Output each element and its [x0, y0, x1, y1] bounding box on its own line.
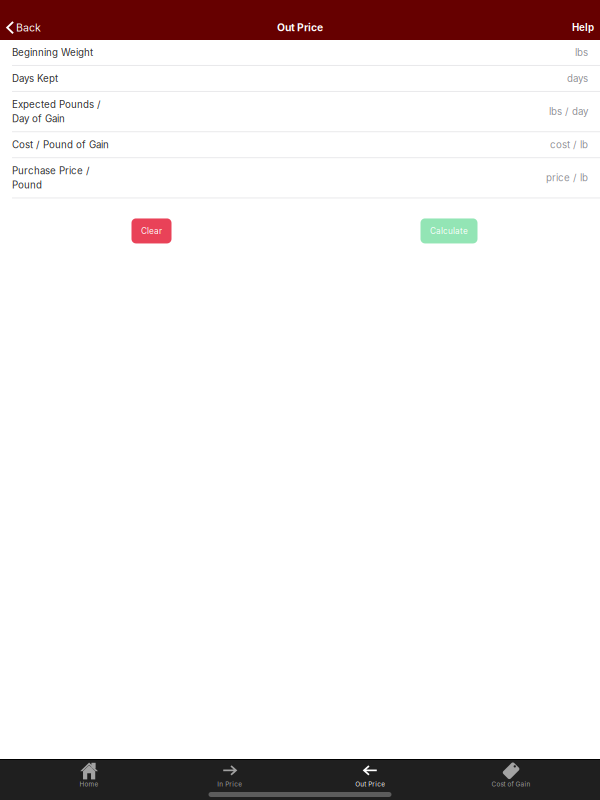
staticText: Expected Pounds /	[12, 99, 101, 110]
staticText: cost / lb	[550, 139, 588, 151]
button[interactable]: In Price	[159, 762, 300, 788]
button[interactable]: Back	[0, 14, 49, 41]
staticText: Help	[572, 22, 594, 33]
button[interactable]: Purchase Price /	[0, 158, 600, 198]
staticText: Cost / Pound of Gain	[12, 139, 109, 151]
button[interactable]: Days Kept	[0, 66, 600, 92]
staticText: Day of Gain	[12, 113, 65, 125]
staticText: Calculate	[430, 226, 468, 236]
staticText: Clear	[141, 226, 162, 236]
button[interactable]: Cost of Gain	[441, 762, 581, 788]
staticText: Back	[16, 21, 41, 34]
button[interactable]: Home	[19, 762, 159, 788]
staticText: Home	[79, 780, 98, 788]
button[interactable]: Help	[562, 15, 600, 40]
staticText: lbs / day	[549, 106, 588, 117]
staticText: lbs	[575, 47, 588, 58]
staticText: Purchase Price /	[12, 165, 90, 177]
staticText: In Price	[217, 780, 242, 788]
button[interactable]: Out Price	[300, 762, 441, 788]
staticText: price / lb	[546, 172, 588, 184]
button[interactable]: Expected Pounds /	[0, 92, 600, 132]
button[interactable]: Clear	[131, 218, 171, 243]
button[interactable]: Cost / Pound of Gain	[0, 132, 600, 158]
staticText: Out Price	[355, 780, 385, 788]
button[interactable]: Calculate	[420, 218, 477, 243]
staticText: Out Price	[277, 21, 323, 34]
staticText: Days Kept	[12, 73, 58, 84]
staticText: Beginning Weight	[12, 47, 93, 58]
staticText: Cost of Gain	[491, 780, 530, 788]
staticText: Pound	[12, 179, 42, 191]
button[interactable]: Beginning Weight	[0, 40, 600, 66]
staticText: days	[567, 73, 588, 84]
